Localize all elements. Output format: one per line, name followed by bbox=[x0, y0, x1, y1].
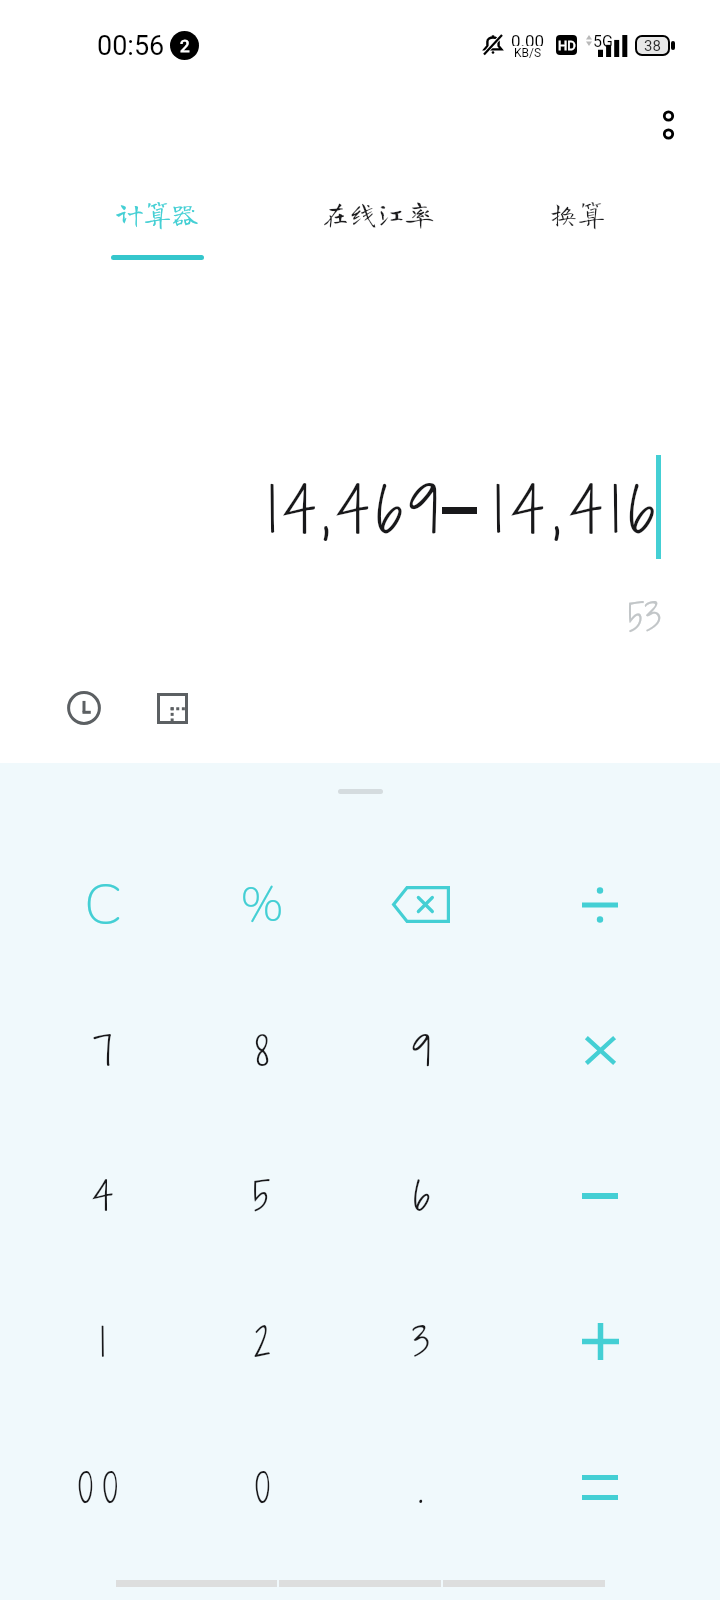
button[interactable]: 3 bbox=[342, 1270, 500, 1415]
button[interactable]: . bbox=[342, 1416, 500, 1561]
button[interactable]: 1 bbox=[24, 1270, 182, 1415]
staticText: 2 bbox=[180, 36, 190, 56]
button[interactable]: Divide bbox=[521, 832, 679, 977]
button[interactable]: History bbox=[52, 676, 116, 740]
button[interactable]: Resize window bbox=[140, 676, 204, 740]
staticText: C bbox=[84, 866, 123, 944]
button[interactable]: 7 bbox=[24, 979, 182, 1124]
button[interactable]: 5 bbox=[183, 1124, 341, 1269]
button[interactable]: % bbox=[183, 832, 341, 977]
button[interactable]: 9 bbox=[342, 979, 500, 1124]
staticText: 5G bbox=[593, 32, 613, 48]
staticText: 00:56 bbox=[97, 30, 165, 60]
staticText: 5 bbox=[253, 1169, 271, 1224]
button[interactable]: 4 bbox=[24, 1124, 182, 1269]
button[interactable]: Minus bbox=[521, 1123, 679, 1268]
staticText: HD bbox=[558, 38, 576, 53]
button[interactable]: C bbox=[24, 832, 182, 977]
button[interactable]: 换算 bbox=[477, 178, 677, 278]
staticText: 14,416 bbox=[494, 466, 664, 553]
staticText: 14,469 bbox=[268, 466, 445, 553]
button[interactable]: 00 bbox=[24, 1416, 182, 1561]
staticText: . bbox=[418, 1461, 424, 1516]
button[interactable]: 在线汇率 bbox=[277, 178, 477, 278]
button[interactable]: 8 bbox=[183, 979, 341, 1124]
button[interactable]: 计算器 bbox=[57, 178, 257, 278]
staticText: % bbox=[240, 872, 284, 937]
staticText: 2 bbox=[254, 1315, 271, 1370]
staticText: 4 bbox=[92, 1169, 114, 1224]
staticText: 53 bbox=[628, 592, 662, 644]
staticText: 9 bbox=[412, 1024, 431, 1079]
staticText: 计算器 bbox=[115, 199, 200, 227]
staticText: 38 bbox=[644, 37, 661, 55]
button[interactable]: More options bbox=[640, 92, 696, 158]
staticText: 0.00 bbox=[511, 31, 545, 46]
staticText: 8 bbox=[255, 1024, 269, 1079]
button[interactable]: Equals bbox=[521, 1415, 679, 1560]
staticText: KB/S bbox=[514, 46, 542, 58]
button[interactable]: Backspace bbox=[342, 832, 500, 977]
staticText: 7 bbox=[93, 1024, 113, 1079]
staticText: 6 bbox=[413, 1169, 430, 1224]
button[interactable]: 2 bbox=[183, 1270, 341, 1415]
staticText: 换算 bbox=[549, 199, 606, 227]
button[interactable]: 6 bbox=[342, 1124, 500, 1269]
staticText: 1 bbox=[100, 1315, 106, 1370]
staticText: 在线汇率 bbox=[321, 199, 434, 227]
button[interactable]: 0 bbox=[183, 1416, 341, 1561]
button[interactable]: Plus bbox=[521, 1269, 679, 1414]
staticText: 0 bbox=[255, 1461, 270, 1516]
staticText: 3 bbox=[412, 1315, 430, 1370]
button[interactable]: Multiply bbox=[521, 978, 679, 1123]
staticText: 00 bbox=[78, 1461, 128, 1516]
